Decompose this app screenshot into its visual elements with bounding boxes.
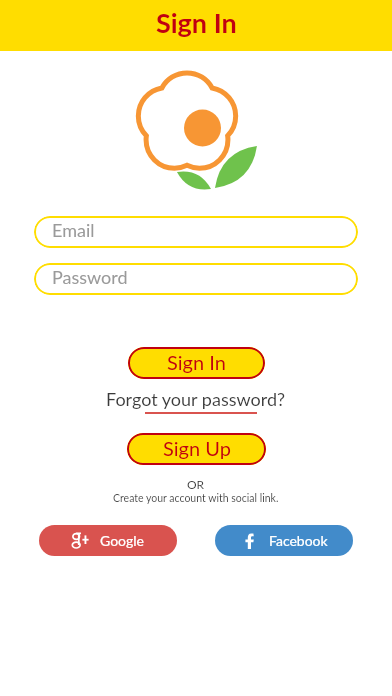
staticText: Sign In	[167, 350, 226, 374]
staticText: Email	[52, 219, 95, 241]
button[interactable]: Facebook	[215, 525, 353, 556]
button[interactable]: Sign In	[128, 347, 265, 379]
staticText: Forgot your password?	[106, 388, 286, 410]
staticText: Facebook	[269, 532, 328, 549]
staticText: Google	[100, 532, 144, 549]
staticText: Sign In	[156, 6, 237, 38]
staticText: Sign Up	[163, 436, 231, 460]
staticText: Password	[52, 266, 128, 288]
button[interactable]: Google	[39, 525, 177, 556]
button[interactable]: Sign Up	[127, 433, 266, 465]
staticText: Create your account with social link.	[113, 492, 279, 505]
button[interactable]: Password	[34, 263, 358, 295]
button[interactable]: Forgot your password?	[106, 388, 286, 414]
staticText: OR	[187, 477, 205, 491]
button[interactable]: Email	[34, 216, 358, 248]
